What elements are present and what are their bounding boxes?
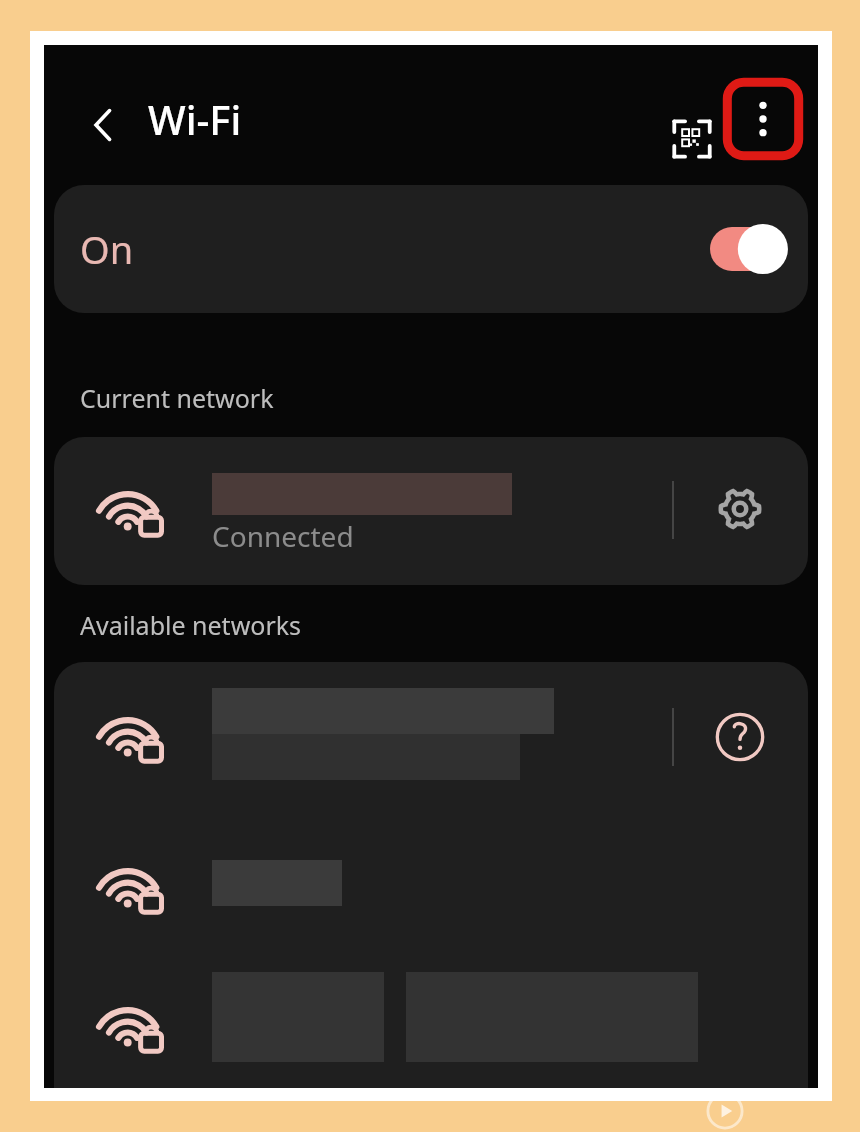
button[interactable]: Network settings [704,473,776,545]
button[interactable]: Back [68,89,140,161]
button[interactable]: More options [720,75,806,163]
staticText: Available networks [80,608,302,642]
button[interactable]: Help [54,662,808,812]
button[interactable]: Scan QR code [656,103,728,175]
button[interactable]: Connected [54,437,808,585]
button[interactable]: Help [704,701,776,773]
staticText: Current network [80,381,274,415]
staticText: Wi-Fi [148,92,242,146]
button[interactable]: On [54,185,808,313]
button[interactable] [54,812,808,960]
button[interactable] [54,960,808,1088]
staticText: Connected [212,517,354,555]
staticText: On [80,223,134,275]
